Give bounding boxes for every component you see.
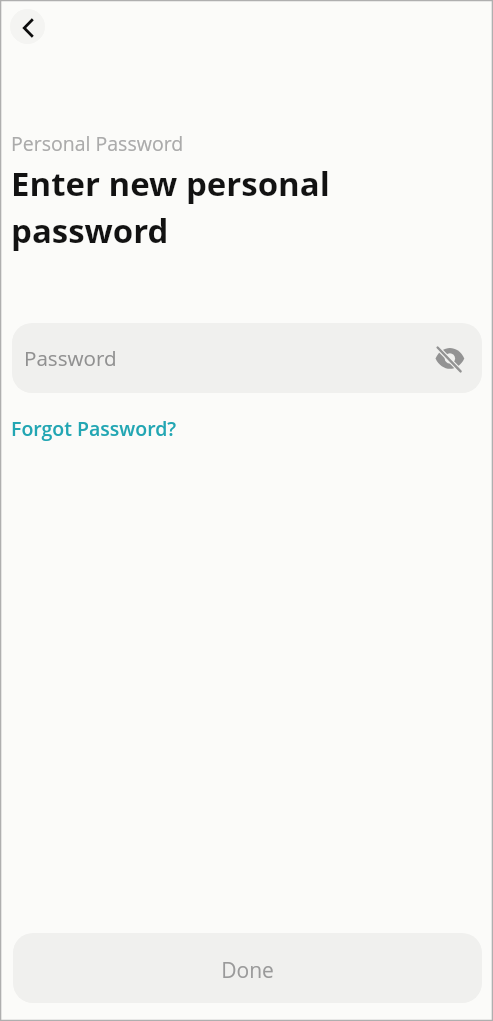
button[interactable]: Done (13, 933, 482, 1003)
button[interactable]: Forgot Password? (11, 415, 177, 442)
staticText: Password (24, 344, 117, 372)
staticText: Personal Password (11, 130, 184, 157)
staticText: Done (221, 956, 274, 985)
button[interactable]: Show password (431, 339, 469, 377)
button[interactable]: Back (10, 9, 45, 44)
staticText: Enter new personal password (11, 161, 330, 253)
button[interactable]: Password (12, 323, 482, 393)
